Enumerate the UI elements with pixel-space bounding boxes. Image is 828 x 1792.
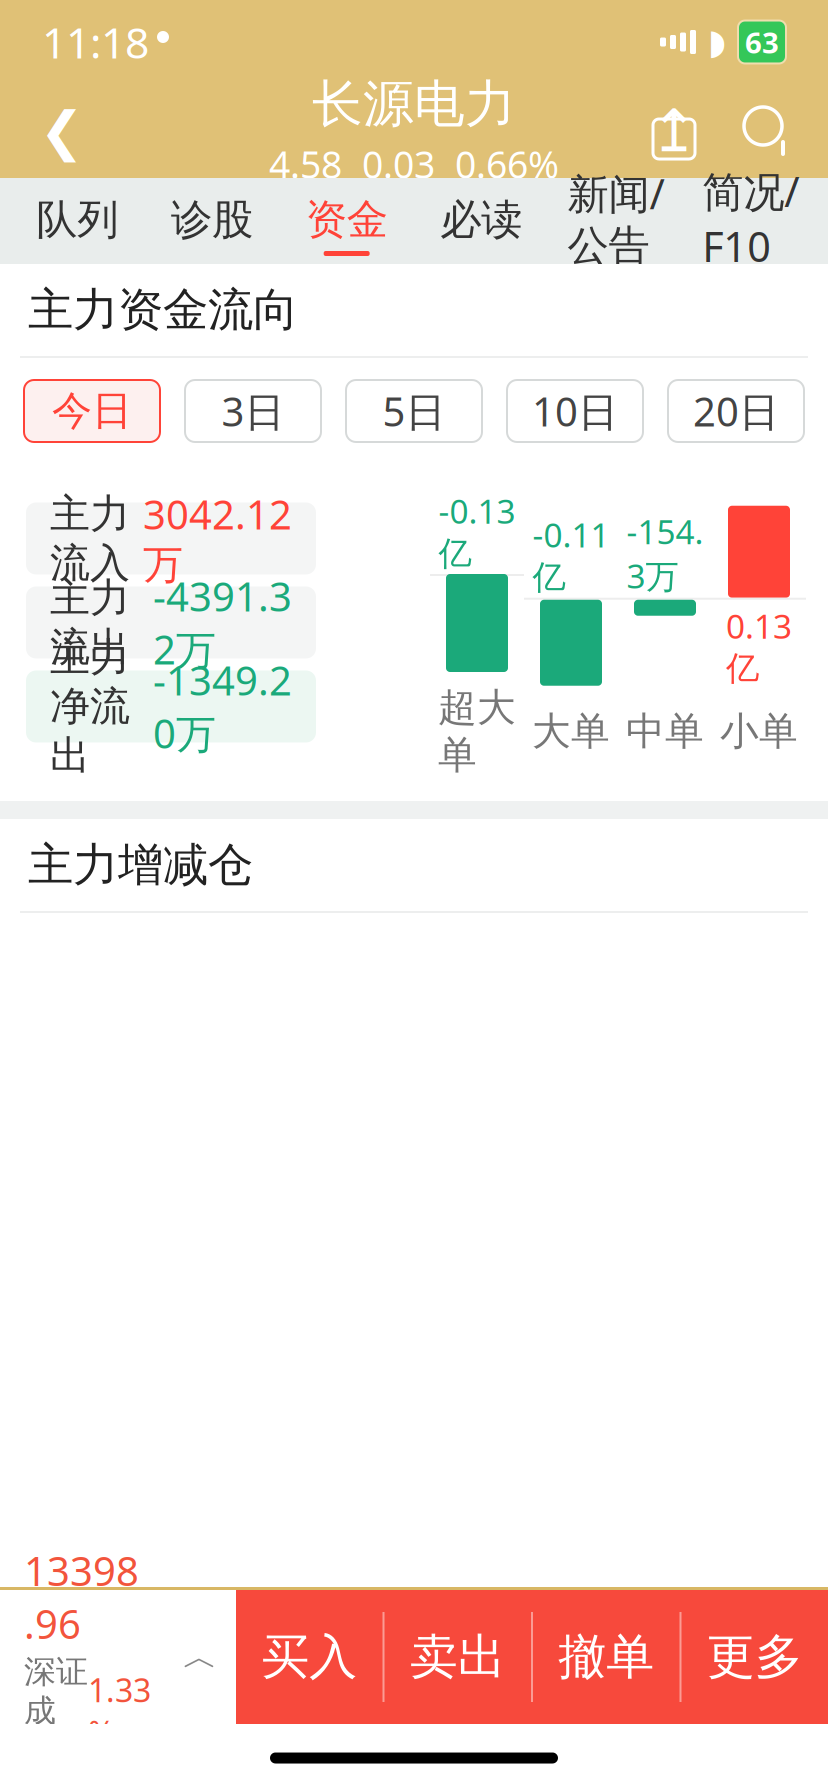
staticText: ︿ — [183, 1636, 218, 1678]
button[interactable]: 3日 — [185, 380, 321, 442]
button[interactable]: 10日 — [507, 380, 643, 442]
staticText: 卖出 — [410, 1627, 506, 1686]
staticText: 简况/F10 — [702, 164, 799, 273]
staticText: 诊股 — [171, 194, 253, 245]
button[interactable]: 资金 — [279, 178, 414, 264]
staticText: 主力流入 — [50, 489, 130, 588]
staticText: 5日 — [382, 384, 445, 437]
staticText: 更多 — [707, 1627, 803, 1686]
staticText: 20日 — [693, 384, 779, 437]
staticText: 13398.96 — [24, 1544, 139, 1650]
staticText: 小单 — [720, 708, 798, 755]
staticText: 今日 — [52, 386, 132, 435]
button[interactable]: 卖出 — [384, 1590, 531, 1724]
button[interactable]: 队列 — [10, 178, 145, 264]
staticText: 11:18 — [42, 14, 149, 70]
staticText: 主力资金流向 — [28, 282, 298, 338]
staticText: ↥ — [649, 98, 698, 164]
staticText: -0.13亿 — [438, 489, 515, 574]
staticText: 撤单 — [558, 1627, 654, 1686]
staticText: 3042.12万 — [143, 487, 292, 590]
staticText: -1349.20万 — [153, 653, 292, 760]
staticText: 中单 — [626, 708, 704, 755]
button[interactable]: 撤单 — [533, 1590, 679, 1724]
staticText: -154.3万 — [626, 509, 703, 598]
button[interactable]: 20日 — [668, 380, 804, 442]
staticText: 队列 — [36, 194, 118, 245]
staticText: ❮ — [39, 101, 84, 161]
staticText: 主力流出 — [50, 573, 130, 672]
staticText: 资金 — [306, 194, 388, 245]
staticText: 必读 — [440, 194, 522, 245]
staticText: 深证成指 — [24, 1652, 88, 1770]
staticText: 0.13亿 — [726, 463, 792, 548]
staticText: 长源电力 — [312, 73, 516, 135]
staticText: 1.33% — [88, 1669, 151, 1754]
staticText: 【免责申明】部分资讯信息、数据资料来源于第三方，平台无法核实信息的真实性、准确性… — [26, 1399, 786, 1743]
button[interactable]: 深证成指 — [0, 1590, 236, 1724]
staticText: 4.58 0.03 0.66% — [269, 139, 559, 189]
button[interactable]: 更多 — [681, 1590, 828, 1724]
staticText: 大单 — [532, 708, 610, 755]
staticText: ◗ — [708, 22, 726, 62]
staticText: 主力净流出 — [50, 633, 130, 780]
button[interactable]: 5日 — [346, 380, 482, 442]
staticText: 超大单 — [438, 684, 516, 779]
button[interactable]: 新闻/公告 — [549, 178, 683, 264]
button[interactable]: 今日 — [24, 380, 160, 442]
staticText: 0.13亿 — [726, 604, 792, 689]
staticText: -4391.32万 — [153, 569, 292, 676]
button[interactable]: 简况/F10 — [683, 178, 818, 264]
staticText: 10日 — [532, 384, 618, 437]
staticText: 3日 — [221, 384, 284, 437]
staticText: -0.11亿 — [532, 512, 609, 598]
staticText: 买入 — [261, 1627, 357, 1686]
staticText: 63 — [745, 22, 779, 61]
button[interactable]: 搜索 — [730, 93, 806, 169]
button[interactable]: 买入 — [236, 1590, 382, 1724]
button[interactable]: 分享 — [636, 93, 712, 169]
button[interactable]: 返回 — [22, 91, 102, 171]
button[interactable]: 必读 — [414, 178, 549, 264]
staticText: 主力增减仓 — [28, 837, 253, 893]
button[interactable]: 诊股 — [145, 178, 279, 264]
staticText: 新闻/公告 — [567, 166, 664, 271]
